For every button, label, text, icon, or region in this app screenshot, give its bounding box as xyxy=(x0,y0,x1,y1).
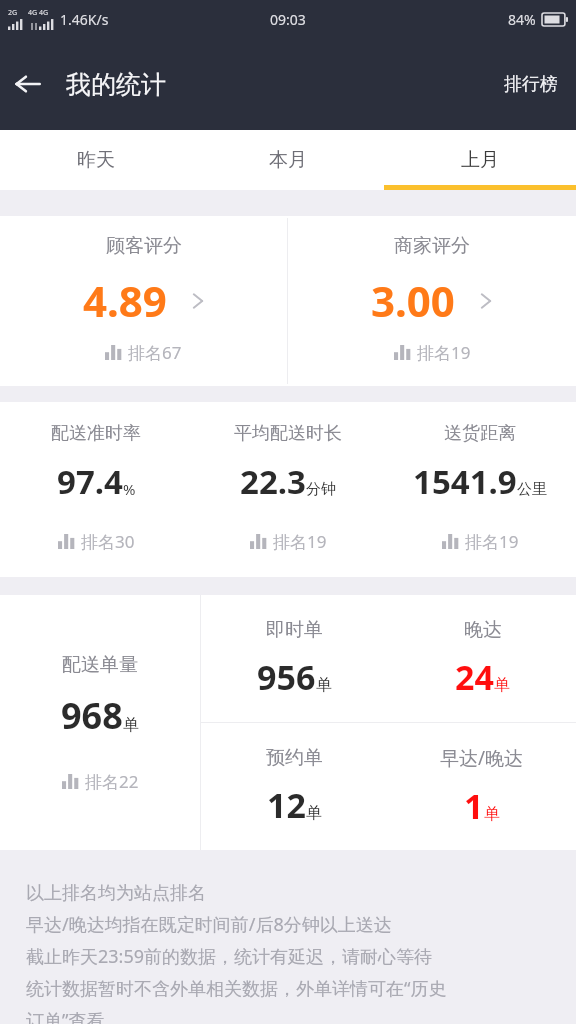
staticText: 配送单量 xyxy=(62,653,138,677)
staticText: 配送准时率 xyxy=(51,422,141,445)
button[interactable]: Back xyxy=(0,56,56,112)
staticText: 公里 xyxy=(517,480,547,499)
button[interactable]: 上月 xyxy=(384,130,576,190)
button[interactable]: 即时单 xyxy=(201,595,388,722)
button[interactable]: 早达/晚达 xyxy=(388,723,576,850)
button[interactable]: 昨天 xyxy=(0,130,192,190)
staticText: 2G xyxy=(8,8,18,18)
staticText: 单 xyxy=(494,675,510,695)
button[interactable]: 商家评分 xyxy=(288,216,576,386)
button[interactable]: 顾客评分 xyxy=(0,216,287,386)
staticText: 商家评分 xyxy=(394,234,470,258)
staticText: 排名30 xyxy=(81,530,135,553)
button[interactable]: 送货距离 xyxy=(384,402,576,577)
staticText: 956 xyxy=(257,654,316,700)
staticText: 3.00 xyxy=(371,272,455,329)
staticText: 分钟 xyxy=(306,480,336,499)
button[interactable]: 配送单量 xyxy=(0,595,200,850)
staticText: 22.3 xyxy=(240,459,306,504)
staticText: 预约单 xyxy=(266,746,323,770)
staticText: 排名19 xyxy=(417,341,471,364)
staticText: 12 xyxy=(267,782,306,828)
staticText: 单 xyxy=(484,804,500,824)
staticText: 1541.9 xyxy=(413,459,517,504)
button[interactable]: 预约单 xyxy=(201,723,388,850)
button[interactable]: 配送准时率 xyxy=(0,402,192,577)
staticText: 单 xyxy=(123,715,139,735)
staticText: 排名22 xyxy=(85,770,139,793)
staticText: 97.4 xyxy=(57,459,123,504)
staticText: 4.89 xyxy=(83,272,167,329)
staticText: 即时单 xyxy=(266,618,323,642)
staticText: 订单”查看 xyxy=(26,1008,105,1024)
staticText: 统计数据暂时不含外单相关数据，外单详情可在“历史 xyxy=(26,976,447,1001)
staticText: 84% xyxy=(508,10,536,29)
staticText: 1.46K/s xyxy=(60,10,109,29)
staticText: 我的统计 xyxy=(66,69,166,100)
staticText: 4G xyxy=(39,8,49,18)
staticText: 4G xyxy=(28,8,38,18)
staticText: 单 xyxy=(306,803,322,823)
staticText: 单 xyxy=(316,675,332,695)
staticText: % xyxy=(123,479,136,499)
staticText: 排名67 xyxy=(128,341,182,364)
staticText: 早达/晚达均指在既定时间前/后8分钟以上送达 xyxy=(26,912,392,937)
staticText: 以上排名均为站点排名 xyxy=(26,882,206,905)
button[interactable]: 平均配送时长 xyxy=(192,402,384,577)
staticText: 上月 xyxy=(461,148,499,172)
button[interactable]: 排行榜 xyxy=(486,63,576,106)
staticText: 截止昨天23:59前的数据，统计有延迟，请耐心等待 xyxy=(26,944,433,969)
staticText: 排行榜 xyxy=(504,73,558,96)
button[interactable]: 晚达 xyxy=(388,595,576,722)
staticText: 排名19 xyxy=(273,530,327,553)
staticText: 晚达 xyxy=(464,618,502,642)
staticText: 排名19 xyxy=(465,530,519,553)
staticText: 968 xyxy=(61,691,123,740)
staticText: 24 xyxy=(455,654,494,700)
staticText: 1 xyxy=(464,783,484,829)
staticText: 09:03 xyxy=(270,10,306,29)
staticText: 送货距离 xyxy=(444,422,516,445)
staticText: 昨天 xyxy=(77,148,115,172)
staticText: 早达/晚达 xyxy=(440,745,524,771)
staticText: 平均配送时长 xyxy=(234,422,342,445)
staticText: 本月 xyxy=(269,148,307,172)
button[interactable]: 本月 xyxy=(192,130,384,190)
staticText: 顾客评分 xyxy=(106,234,182,258)
